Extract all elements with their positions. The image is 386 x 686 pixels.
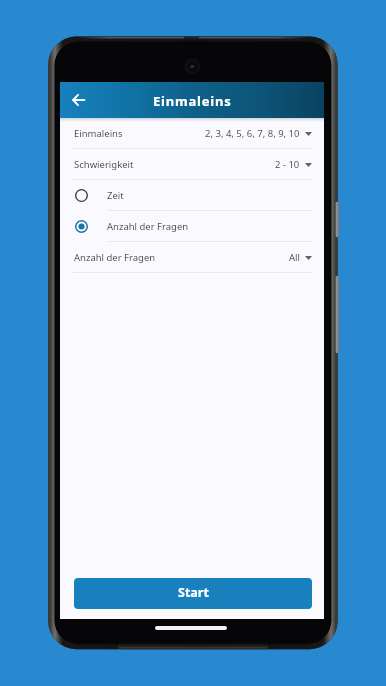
button[interactable]: Start (74, 578, 312, 609)
button[interactable]: Anzahl der Fragen (60, 242, 324, 273)
staticText: All (289, 251, 300, 264)
staticText: Zeit (107, 189, 124, 202)
staticText: Start (178, 584, 209, 601)
staticText: 2 - 10 (275, 158, 300, 171)
staticText: Anzahl der Fragen (74, 251, 156, 264)
staticText: Einmaleins (153, 92, 232, 110)
button[interactable]: Zeit (60, 180, 324, 211)
staticText: Anzahl der Fragen (107, 220, 189, 233)
button[interactable]: Back (64, 85, 92, 115)
button[interactable]: Einmaleins (60, 118, 324, 149)
staticText: Einmaleins (74, 127, 123, 140)
staticText: Schwierigkeit (74, 158, 134, 171)
button[interactable]: Schwierigkeit (60, 149, 324, 180)
staticText: 2, 3, 4, 5, 6, 7, 8, 9, 10 (205, 127, 300, 140)
button[interactable]: Anzahl der Fragen (60, 211, 324, 242)
